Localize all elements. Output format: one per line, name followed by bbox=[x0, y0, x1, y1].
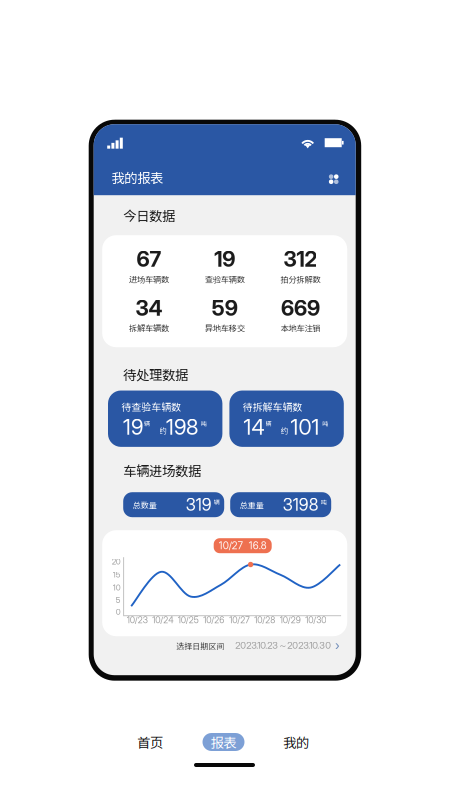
staticText: 今日数据 bbox=[123, 205, 175, 225]
staticText: 辆 bbox=[214, 498, 220, 507]
staticText: 669 bbox=[281, 295, 320, 321]
staticText: 查验车辆数 bbox=[205, 273, 245, 285]
staticText: 10/23 bbox=[127, 615, 148, 625]
staticText: 10/29 bbox=[280, 615, 301, 625]
button[interactable]: 首页 bbox=[120, 731, 180, 753]
staticText: 我的 bbox=[283, 732, 309, 752]
staticText: 拍分拆解数 bbox=[280, 273, 320, 285]
staticText: 10/25 bbox=[178, 615, 199, 625]
button[interactable]: 待拆解车辆数 bbox=[229, 390, 344, 447]
staticText: 辆 bbox=[144, 419, 150, 428]
staticText: 10/28 bbox=[254, 615, 275, 625]
staticText: 待处理数据 bbox=[123, 364, 188, 384]
staticText: 约 bbox=[281, 425, 288, 436]
staticText: 10/27 16.8 bbox=[219, 540, 267, 552]
staticText: 辆 bbox=[265, 419, 271, 428]
staticText: 14 bbox=[243, 414, 264, 440]
staticText: 首页 bbox=[137, 732, 163, 752]
button[interactable]: 总重量 bbox=[230, 492, 331, 517]
staticText: 319 bbox=[186, 495, 212, 515]
staticText: 吨 bbox=[201, 419, 207, 428]
staticText: 101 bbox=[290, 414, 319, 440]
staticText: 总数量 bbox=[133, 499, 157, 510]
staticText: 异地车移交 bbox=[205, 322, 245, 334]
staticText: 报表 bbox=[210, 732, 236, 752]
staticText: 待拆解车辆数 bbox=[243, 399, 303, 414]
staticText: 选择日期区间 bbox=[176, 640, 224, 651]
staticText: › bbox=[335, 637, 339, 653]
staticText: 198 bbox=[166, 414, 198, 440]
button[interactable]: More bbox=[326, 171, 342, 187]
staticText: 10/30 bbox=[305, 615, 326, 625]
staticText: 拆解车辆数 bbox=[129, 322, 169, 334]
staticText: 34 bbox=[135, 295, 162, 321]
staticText: 10/26 bbox=[203, 615, 224, 625]
staticText: 67 bbox=[136, 246, 161, 272]
staticText: 59 bbox=[212, 295, 238, 321]
staticText: 车辆进场数据 bbox=[123, 460, 201, 480]
button[interactable]: 待查验车辆数 bbox=[108, 390, 222, 447]
staticText: 10/24 bbox=[152, 615, 173, 625]
button[interactable]: 选择日期区间 bbox=[102, 637, 347, 655]
staticText: 10 bbox=[113, 583, 121, 592]
staticText: 19 bbox=[123, 414, 143, 440]
staticText: 进场车辆数 bbox=[129, 273, 169, 285]
staticText: 5 bbox=[116, 595, 121, 605]
staticText: 20 bbox=[112, 557, 121, 567]
staticText: 吨 bbox=[321, 498, 327, 507]
staticText: 本地车注销 bbox=[280, 322, 320, 334]
staticText: 0 bbox=[116, 607, 121, 617]
staticText: 312 bbox=[283, 246, 317, 272]
staticText: 2023.10.23～2023.10.30 bbox=[235, 640, 331, 652]
staticText: 总重量 bbox=[240, 499, 264, 510]
button[interactable]: 总数量 bbox=[123, 492, 224, 517]
button[interactable]: 报表 bbox=[193, 731, 253, 753]
staticText: 10/27 bbox=[229, 615, 249, 625]
staticText: 3198 bbox=[283, 495, 319, 515]
staticText: 我的报表 bbox=[111, 167, 163, 187]
staticText: 19 bbox=[214, 246, 235, 272]
staticText: 待查验车辆数 bbox=[121, 399, 181, 414]
staticText: 约 bbox=[160, 425, 167, 436]
button[interactable]: 我的 bbox=[266, 731, 326, 753]
staticText: 15 bbox=[113, 570, 121, 579]
staticText: 吨 bbox=[322, 419, 328, 428]
